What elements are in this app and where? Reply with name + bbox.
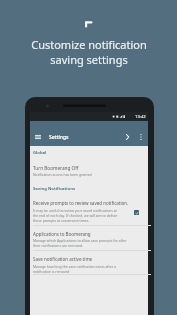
button[interactable]: Global bbox=[30, 146, 148, 160]
staticText: Settings bbox=[49, 134, 69, 141]
staticText: Saving Notifications bbox=[33, 186, 76, 192]
staticText: saving settings bbox=[50, 52, 128, 67]
staticText: Notification access has been granted bbox=[33, 172, 92, 177]
button[interactable]: Receive prompts to review saved notifica… bbox=[30, 199, 148, 225]
staticText: Global bbox=[33, 150, 47, 156]
staticText: 13:42 bbox=[135, 114, 146, 120]
button[interactable]: Turn Boomerang Off bbox=[30, 163, 148, 180]
staticText: Receive prompts to review saved notifica… bbox=[33, 200, 129, 206]
button[interactable]: Toggle night mode bbox=[120, 126, 134, 147]
button[interactable]: Applications to Boomerang bbox=[30, 226, 148, 250]
staticText: their notifications are removed. bbox=[33, 243, 84, 248]
button[interactable]: Receive prompts checkbox bbox=[130, 206, 142, 218]
staticText: Customize notification bbox=[31, 37, 147, 52]
staticText: Manage how long the save notification ex… bbox=[33, 264, 116, 269]
staticText: Save notification active time bbox=[33, 256, 93, 262]
staticText: these prompts at convenient times. bbox=[33, 218, 90, 223]
staticText: Turn Boomerang Off bbox=[33, 165, 79, 171]
staticText: Manage which Applications to allow save … bbox=[33, 238, 127, 243]
button[interactable]: Save notification active time bbox=[30, 251, 148, 275]
staticText: It may be useful to review your saved no… bbox=[33, 208, 117, 213]
button[interactable]: Open navigation menu bbox=[31, 126, 45, 147]
staticText: the end of each day. If checked, we will… bbox=[33, 213, 118, 218]
staticText: Applications to Boomerang bbox=[33, 231, 91, 237]
staticText: notification is removed bbox=[33, 269, 70, 274]
button[interactable]: Saving Notifications bbox=[30, 182, 148, 196]
button[interactable]: More options bbox=[134, 126, 147, 147]
